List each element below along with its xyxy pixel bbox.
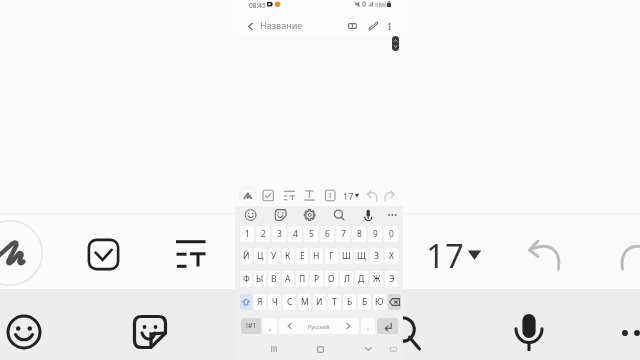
- staticText: !#1: [246, 321, 257, 331]
- staticText: Русский: [308, 323, 330, 330]
- button[interactable]: Backspace: [388, 294, 401, 310]
- button[interactable]: Home: [312, 339, 328, 359]
- button[interactable]: Щ: [355, 248, 368, 264]
- staticText: Я: [257, 296, 263, 308]
- staticText: М: [301, 296, 309, 308]
- staticText: Г: [329, 250, 334, 262]
- staticText: Р: [314, 273, 320, 285]
- button[interactable]: Р: [310, 271, 323, 287]
- button[interactable]: 1: [240, 226, 254, 242]
- button[interactable]: Space, Russian: [279, 318, 359, 334]
- staticText: Ц: [257, 250, 264, 262]
- button[interactable]: С: [283, 294, 296, 310]
- button[interactable]: Scroll: [392, 36, 399, 51]
- staticText: В: [271, 273, 277, 285]
- staticText: К: [285, 250, 291, 262]
- button[interactable]: 9: [368, 226, 382, 242]
- button[interactable]: 0: [384, 226, 398, 242]
- button[interactable]: Enter: [377, 318, 398, 334]
- staticText: Щ: [357, 250, 366, 262]
- button[interactable]: 8: [352, 226, 366, 242]
- button[interactable]: Reading mode: [341, 15, 363, 37]
- staticText: Ю: [375, 296, 384, 308]
- button[interactable]: Shift: [240, 294, 252, 310]
- button[interactable]: 6: [320, 226, 334, 242]
- button[interactable]: М: [298, 294, 311, 310]
- staticText: Е: [300, 250, 305, 262]
- button[interactable]: П: [296, 271, 308, 287]
- button[interactable]: Switch keyboard: [386, 339, 400, 359]
- button[interactable]: Back: [241, 15, 259, 37]
- button[interactable]: Ш: [340, 248, 353, 264]
- button[interactable]: З: [370, 248, 383, 264]
- button[interactable]: Г: [325, 248, 338, 264]
- button[interactable]: Б: [358, 294, 371, 310]
- staticText: 17: [343, 190, 354, 202]
- staticText: З: [374, 250, 379, 262]
- button[interactable]: More options: [382, 15, 397, 37]
- button[interactable]: К: [282, 248, 294, 264]
- staticText: Н: [313, 250, 320, 262]
- staticText: Д: [358, 273, 365, 285]
- button[interactable]: 4: [288, 226, 302, 242]
- staticText: Ч: [272, 296, 278, 308]
- button[interactable]: Е: [296, 248, 308, 264]
- button[interactable]: .: [361, 318, 375, 334]
- staticText: Б: [362, 296, 368, 308]
- staticText: Х: [389, 250, 394, 262]
- staticText: 5: [309, 228, 314, 240]
- staticText: 6: [325, 228, 330, 240]
- button[interactable]: 2: [256, 226, 270, 242]
- staticText: 7: [341, 228, 346, 240]
- button[interactable]: Й: [240, 248, 252, 264]
- button[interactable]: Ю: [373, 294, 386, 310]
- button[interactable]: Ж: [370, 271, 383, 287]
- staticText: О: [328, 273, 335, 285]
- staticText: Ф: [243, 273, 250, 285]
- staticText: .: [367, 321, 370, 332]
- staticText: Й: [243, 250, 250, 262]
- staticText: И: [316, 296, 323, 308]
- button[interactable]: Back: [360, 339, 376, 359]
- button[interactable]: Ц: [254, 248, 266, 264]
- button[interactable]: Symbols: [241, 318, 261, 334]
- button[interactable]: А: [282, 271, 294, 287]
- button[interactable]: Я: [254, 294, 266, 310]
- staticText: Л: [344, 273, 350, 285]
- staticText: Название: [260, 19, 303, 31]
- button[interactable]: Н: [310, 248, 323, 264]
- staticText: Т: [332, 296, 337, 308]
- staticText: С: [287, 296, 293, 308]
- staticText: 2: [261, 228, 266, 240]
- button[interactable]: Ф: [240, 271, 252, 287]
- button[interactable]: Т: [328, 294, 341, 310]
- button[interactable]: [0, 214, 640, 289]
- button[interactable]: У: [268, 248, 280, 264]
- staticText: 1: [245, 228, 250, 240]
- button[interactable]: Ь: [343, 294, 356, 310]
- button[interactable]: Ч: [268, 294, 281, 310]
- button[interactable]: Recent apps: [266, 339, 282, 359]
- staticText: Ы: [256, 273, 264, 285]
- button[interactable]: Э: [385, 271, 398, 287]
- button[interactable]: Л: [340, 271, 353, 287]
- staticText: П: [299, 273, 306, 285]
- button[interactable]: 7: [336, 226, 350, 242]
- staticText: 9: [373, 228, 378, 240]
- button[interactable]: 3: [272, 226, 286, 242]
- button[interactable]: Attach file: [362, 15, 384, 37]
- button[interactable]: 5: [304, 226, 318, 242]
- button[interactable]: Д: [355, 271, 368, 287]
- staticText: У: [271, 250, 277, 262]
- button[interactable]: Ы: [254, 271, 266, 287]
- staticText: 17: [426, 233, 464, 278]
- button[interactable]: ,: [263, 318, 277, 334]
- staticText: А: [285, 273, 291, 285]
- staticText: 08:45: [249, 1, 266, 10]
- staticText: 0: [389, 228, 394, 240]
- button[interactable]: В: [268, 271, 280, 287]
- button[interactable]: И: [313, 294, 326, 310]
- button[interactable]: О: [325, 271, 338, 287]
- staticText: 8: [357, 228, 362, 240]
- button[interactable]: Х: [385, 248, 398, 264]
